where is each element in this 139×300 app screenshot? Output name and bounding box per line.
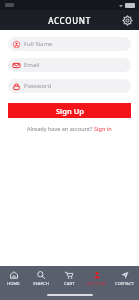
button[interactable]: CONTACT (111, 266, 139, 290)
staticText: CONTACT (115, 281, 135, 286)
button[interactable]: CART (55, 266, 83, 290)
staticText: Sign in (94, 125, 112, 132)
staticText: HOME (7, 281, 20, 286)
staticText: SEARCH (33, 281, 50, 286)
button[interactable]: Settings (120, 13, 134, 27)
staticText: Password (24, 82, 52, 90)
button[interactable]: Email (8, 58, 131, 72)
button[interactable]: SEARCH (27, 266, 55, 290)
button[interactable]: ACCOUNT (83, 266, 111, 290)
staticText: Email (24, 61, 40, 69)
staticText: CART (64, 281, 75, 286)
staticText: ACCOUNT (48, 15, 91, 26)
button[interactable]: Sign in (94, 125, 112, 132)
button[interactable]: Full Name (8, 37, 131, 51)
staticText: Full Name (24, 40, 53, 48)
button[interactable]: Sign Up (8, 103, 131, 118)
button[interactable]: Password (8, 79, 131, 93)
staticText: Already have an account? (27, 125, 94, 132)
staticText: ACCOUNT (87, 281, 108, 286)
staticText: Sign Up (56, 106, 84, 116)
button[interactable]: HOME (0, 266, 27, 290)
